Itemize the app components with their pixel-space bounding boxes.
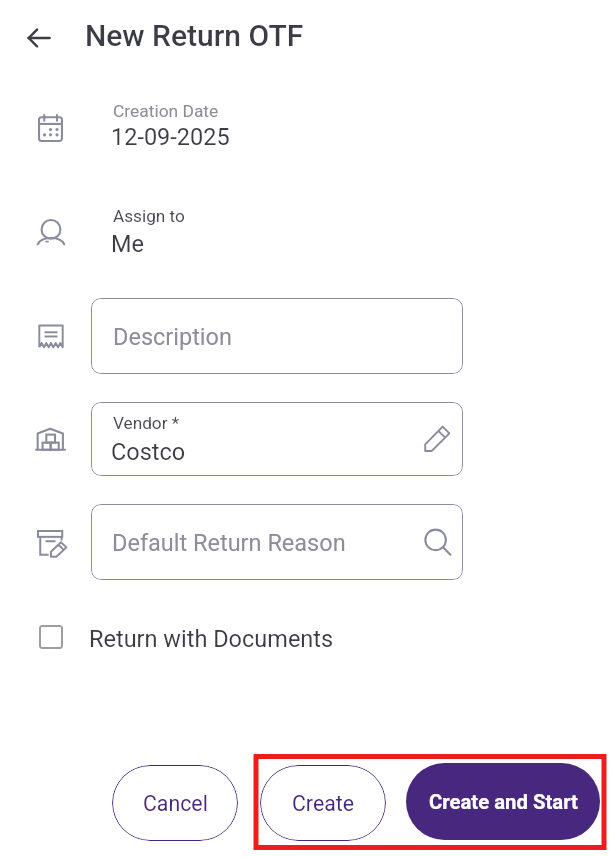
staticText: Cancel [143,791,208,816]
staticText: Description [113,323,232,351]
button[interactable]: Return with Documents [32,618,342,656]
button[interactable]: Search [424,528,451,555]
staticText: Costco [111,438,186,466]
button[interactable]: Vendor * [91,402,463,476]
staticText: 12-09-2025 [111,123,230,151]
button[interactable]: Description [91,298,463,374]
staticText: Return with Documents [89,625,334,653]
staticText: New Return OTF [85,18,304,53]
staticText: Assign to [113,206,185,226]
button[interactable]: Back [25,23,53,51]
staticText: Vendor * [113,413,180,433]
button[interactable]: Edit vendor [424,425,451,452]
staticText: Create [292,791,355,816]
staticText: Creation Date [113,101,219,121]
button[interactable]: Default Return Reason [91,504,463,580]
button[interactable]: Cancel [112,765,238,841]
staticText: Create and Start [429,790,578,814]
staticText: Default Return Reason [112,529,346,557]
button[interactable]: Create and Start [406,763,600,840]
button[interactable]: Create [260,765,386,841]
staticText: Me [111,230,144,258]
